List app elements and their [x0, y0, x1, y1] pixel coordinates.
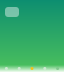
button[interactable]: Tab	[51, 65, 64, 72]
button[interactable]: Tab	[26, 65, 38, 72]
button[interactable]: Tab	[38, 65, 51, 72]
button[interactable]: Tab	[0, 65, 13, 72]
button[interactable]: Tab	[13, 65, 26, 72]
